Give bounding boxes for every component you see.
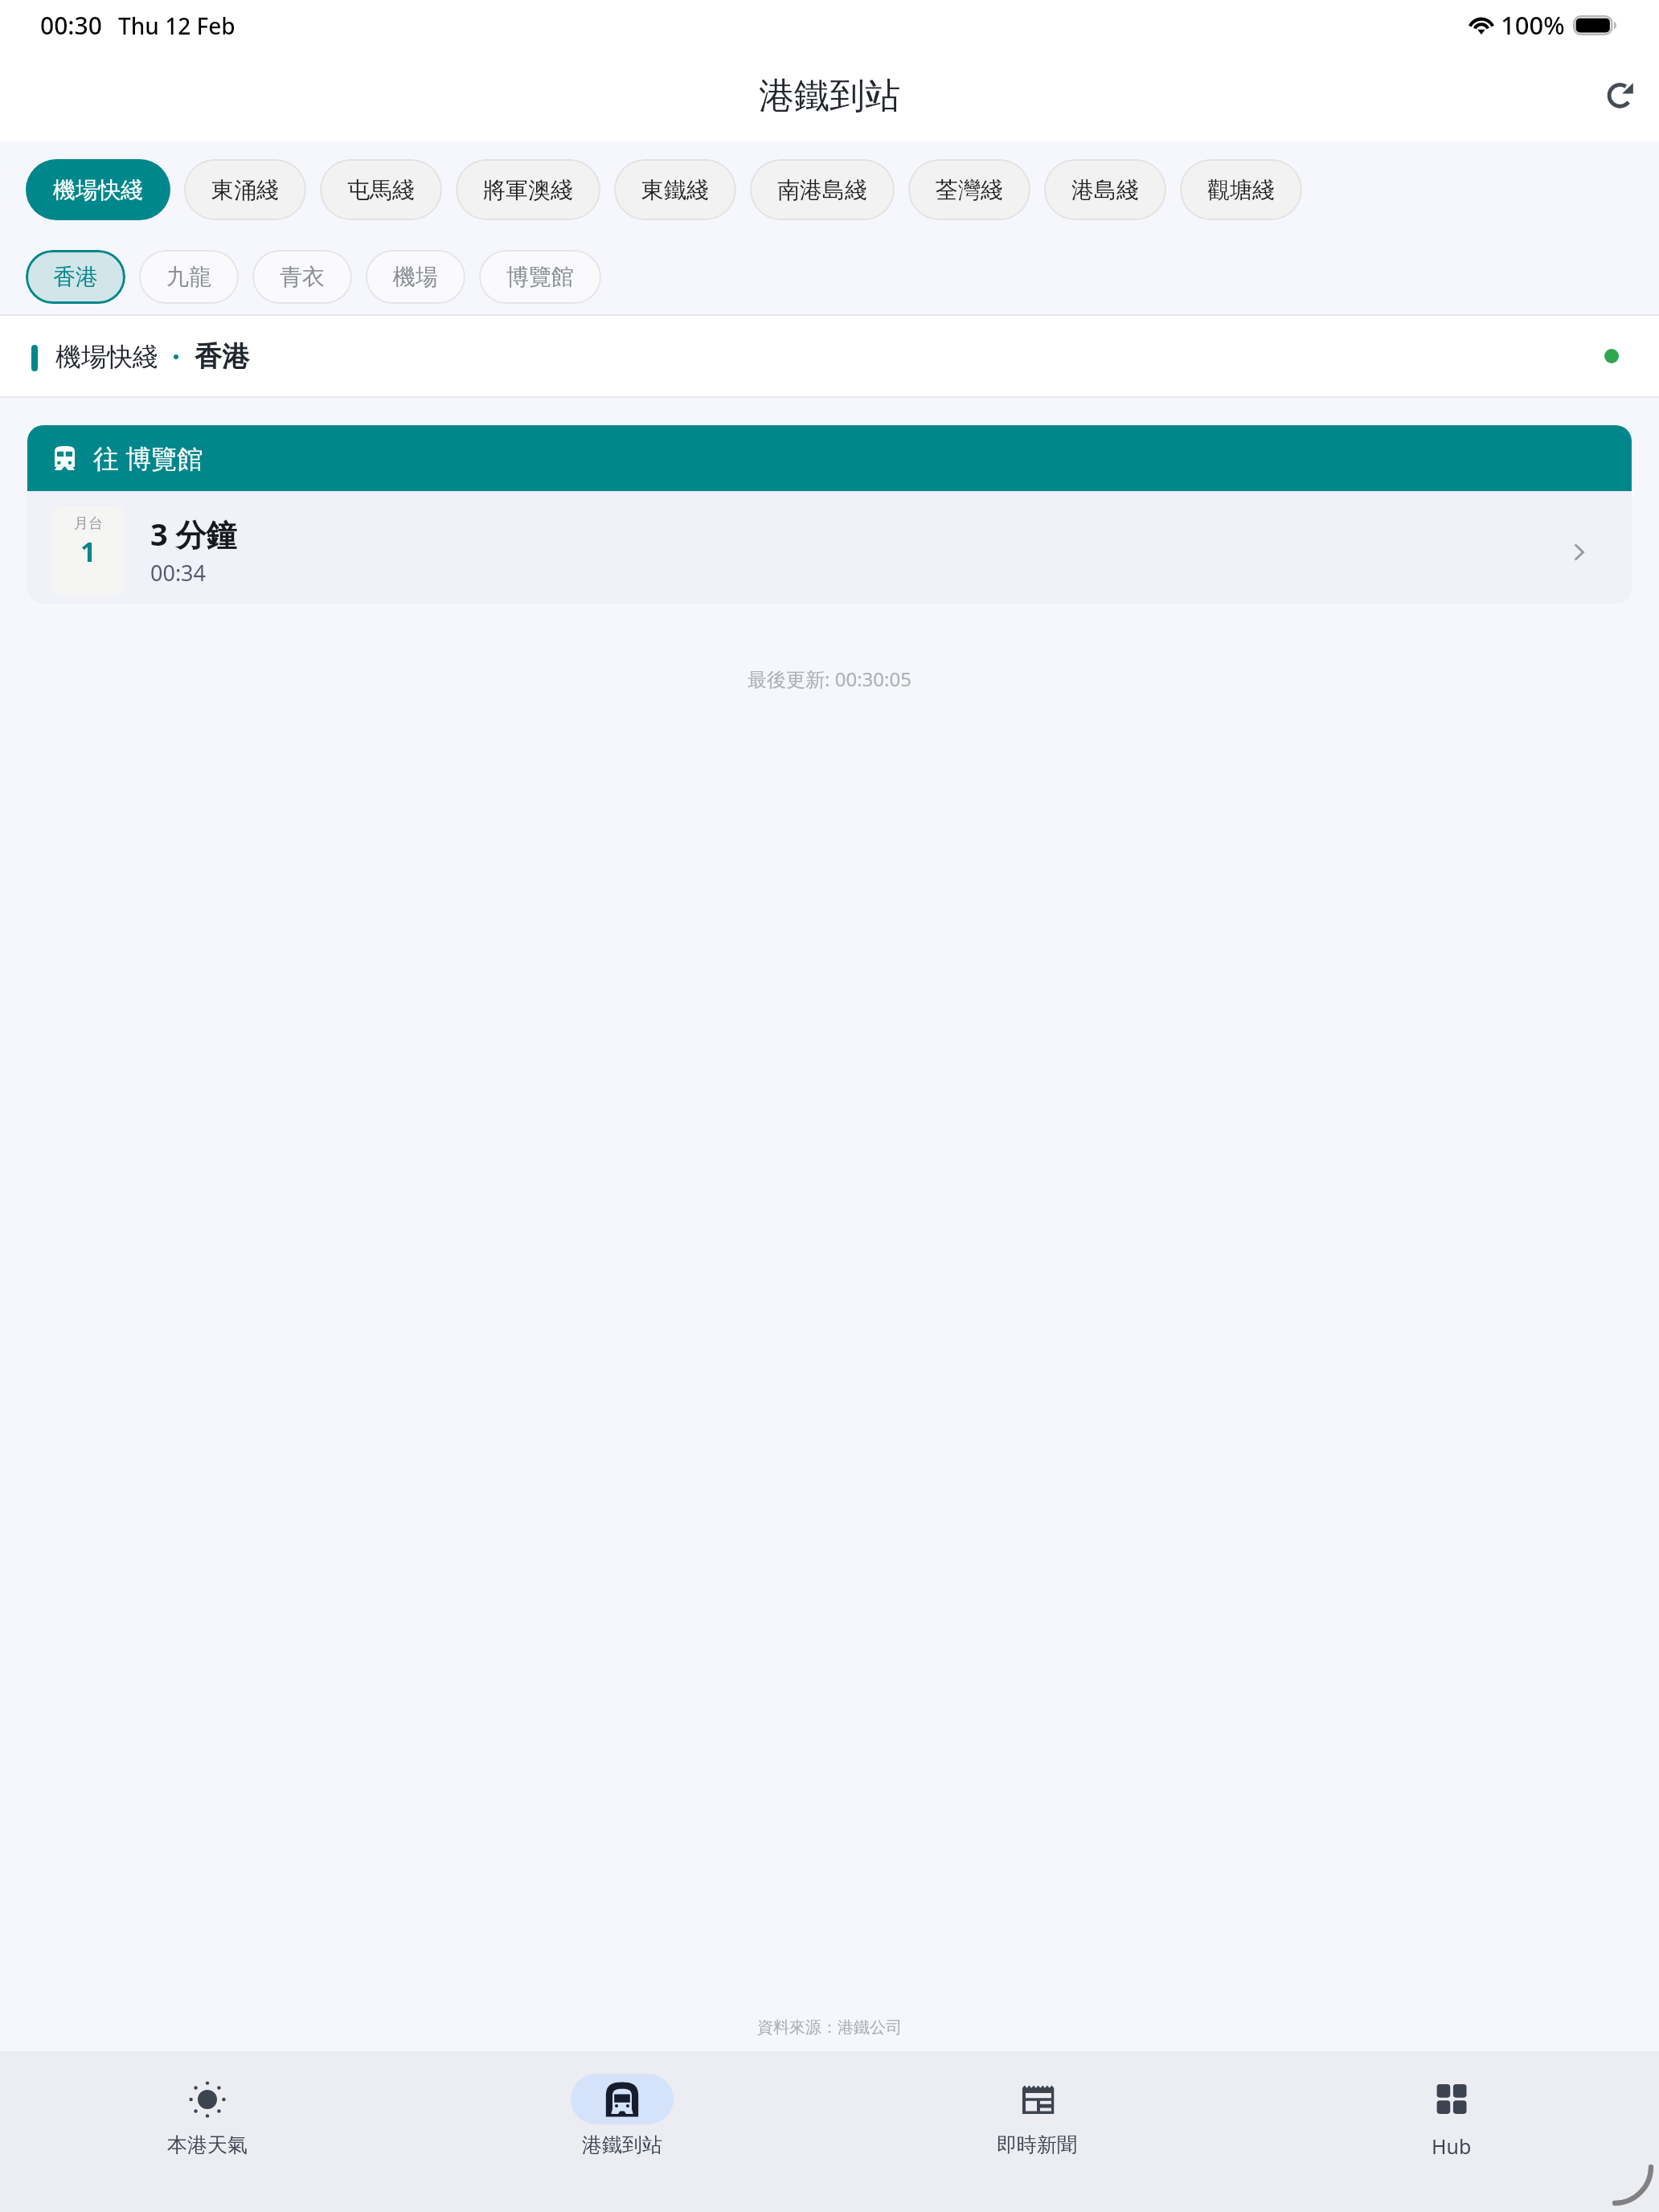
staticText: Thu 12 Feb: [118, 10, 236, 41]
staticText: 觀塘綫: [1207, 176, 1275, 204]
staticText: 博覽館: [506, 263, 574, 291]
button[interactable]: 港島綫: [1044, 159, 1166, 220]
button[interactable]: 觀塘綫: [1180, 159, 1302, 220]
staticText: 機場: [393, 263, 438, 291]
staticText: 往 博覽館: [93, 440, 203, 476]
button[interactable]: 南港島綫: [750, 159, 895, 220]
button[interactable]: MTR arrivals: [415, 2051, 829, 2212]
button[interactable]: 屯馬綫: [320, 159, 442, 220]
staticText: 青衣: [280, 263, 325, 291]
staticText: 00:30: [40, 9, 102, 42]
staticText: 本港天氣: [167, 2132, 248, 2157]
staticText: 最後更新: 00:30:05: [0, 666, 1659, 692]
button[interactable]: 博覽館: [479, 250, 601, 304]
staticText: 1: [80, 533, 96, 570]
staticText: 機場快綫: [55, 341, 158, 373]
button[interactable]: 將軍澳綫: [456, 159, 600, 220]
button[interactable]: 東鐵綫: [614, 159, 736, 220]
staticText: 東鐵綫: [641, 176, 709, 204]
staticText: Hub: [1432, 2132, 1472, 2160]
staticText: 東涌綫: [211, 176, 279, 204]
staticText: 月台: [74, 514, 103, 533]
staticText: 屯馬綫: [347, 176, 415, 204]
staticText: 香港: [53, 263, 98, 291]
staticText: 港鐵到站: [582, 2132, 662, 2157]
staticText: 九龍: [166, 263, 211, 291]
staticText: 00:34: [150, 558, 207, 588]
button[interactable]: Refresh: [1585, 60, 1656, 131]
staticText: 將軍澳綫: [483, 176, 573, 204]
button[interactable]: Local weather: [0, 2051, 415, 2212]
button[interactable]: 機場: [366, 250, 465, 304]
staticText: 港鐵到站: [759, 74, 900, 118]
button[interactable]: 香港: [26, 250, 125, 304]
button[interactable]: Hub: [1244, 2051, 1659, 2212]
staticText: 香港: [195, 339, 249, 374]
button[interactable]: 機場快綫: [26, 159, 170, 220]
staticText: 即時新聞: [997, 2132, 1077, 2157]
staticText: 港島綫: [1071, 176, 1139, 204]
button[interactable]: 青衣: [252, 250, 352, 304]
button[interactable]: 月台: [27, 491, 1632, 604]
staticText: 機場快綫: [53, 176, 143, 204]
button[interactable]: Live news: [829, 2051, 1244, 2212]
button[interactable]: 東涌綫: [184, 159, 306, 220]
button[interactable]: 九龍: [139, 250, 239, 304]
staticText: 3 分鐘: [150, 513, 237, 555]
staticText: 資料來源：港鐵公司: [0, 2017, 1659, 2038]
staticText: 荃灣綫: [936, 176, 1003, 204]
staticText: 南港島綫: [777, 176, 867, 204]
staticText: 100%: [1501, 8, 1565, 42]
button[interactable]: 荃灣綫: [908, 159, 1030, 220]
